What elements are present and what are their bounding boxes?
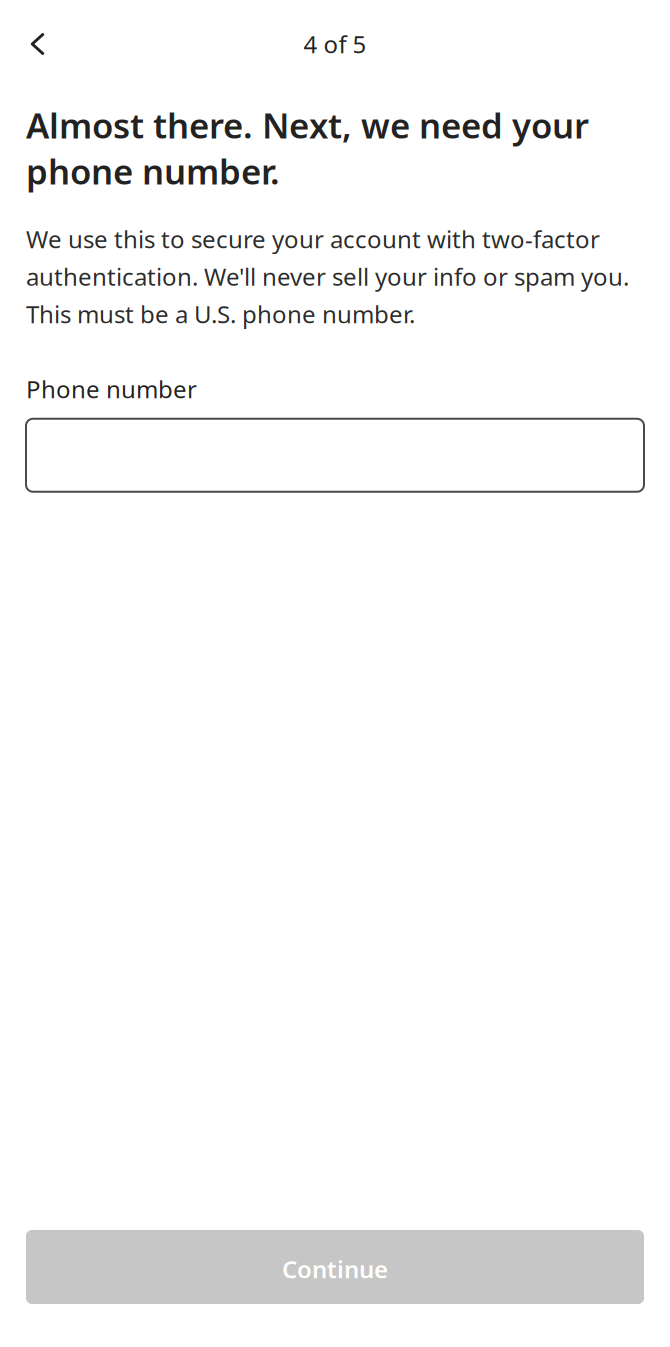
staticText: Phone number (26, 373, 197, 405)
button[interactable]: Continue (26, 1230, 644, 1304)
button[interactable]: Phone number (26, 419, 644, 492)
staticText: 4 of 5 (303, 28, 366, 60)
staticText: We use this to secure your account with … (26, 223, 629, 330)
staticText: Almost there. Next, we need your phone n… (26, 102, 589, 194)
button[interactable]: Back (15, 22, 59, 66)
staticText: Continue (282, 1253, 388, 1285)
